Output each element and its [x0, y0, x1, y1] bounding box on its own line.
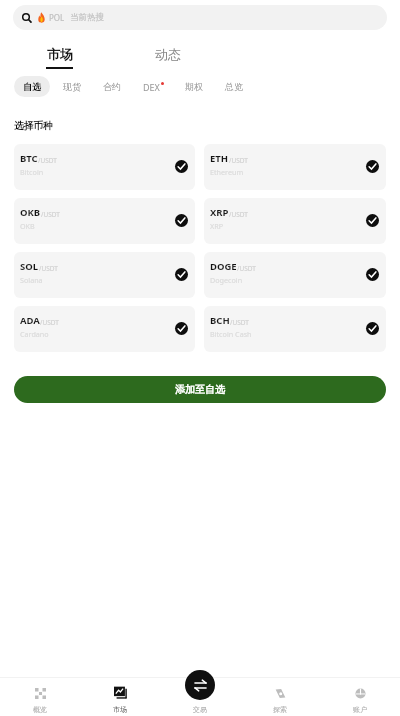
staticText: 概览	[33, 705, 47, 714]
other: 账户	[355, 688, 366, 699]
staticText: 市场	[113, 705, 127, 714]
staticText: 市场	[47, 46, 73, 62]
staticText: BCH	[210, 314, 230, 327]
staticText: 探索	[273, 705, 287, 714]
staticText: 总览	[225, 81, 243, 92]
staticText: 账户	[353, 705, 367, 714]
staticText: OKB	[20, 206, 41, 219]
button[interactable]: 自选	[14, 76, 50, 97]
button[interactable]: ADA	[14, 306, 195, 352]
staticText: ETH	[210, 152, 229, 165]
staticText: Ethereum	[210, 167, 244, 177]
button[interactable]: DOGE	[204, 252, 386, 298]
button[interactable]: 期权	[176, 76, 212, 97]
button[interactable]: 动态	[154, 46, 182, 70]
staticText: OKB	[20, 221, 35, 231]
button[interactable]: 总览	[216, 76, 252, 97]
button[interactable]: Search	[13, 5, 387, 30]
staticText: 期权	[185, 81, 203, 92]
staticText: 选择币种	[14, 120, 53, 132]
button[interactable]: SOL	[14, 252, 195, 298]
staticText: POL	[49, 12, 65, 23]
staticText: /USDT	[230, 318, 249, 327]
staticText: SOL	[20, 260, 39, 273]
button[interactable]: 现货	[54, 76, 90, 97]
staticText: 添加至自选	[175, 383, 225, 396]
button[interactable]: 账户	[320, 670, 400, 716]
other: 市场	[114, 686, 127, 699]
button[interactable]: 添加至自选	[14, 376, 386, 403]
staticText: 合约	[103, 81, 121, 92]
staticText: ADA	[20, 314, 40, 327]
button[interactable]: 合约	[94, 76, 130, 97]
button[interactable]: BCH	[204, 306, 386, 352]
staticText: Solana	[20, 275, 43, 285]
other: 概览	[35, 688, 46, 699]
staticText: 当前热搜	[70, 12, 104, 23]
button[interactable]: 概览	[0, 670, 80, 716]
staticText: 动态	[155, 46, 181, 62]
button[interactable]: 交易	[160, 670, 240, 716]
staticText: /USDT	[38, 156, 57, 165]
staticText: 自选	[23, 81, 41, 92]
button[interactable]: 市场	[45, 46, 73, 70]
staticText: /USDT	[229, 156, 248, 165]
button[interactable]: 探索	[240, 670, 320, 716]
button[interactable]: OKB	[14, 198, 195, 244]
button[interactable]: ETH	[204, 144, 386, 190]
staticText: 现货	[63, 81, 81, 92]
staticText: /USDT	[229, 210, 248, 219]
staticText: /USDT	[237, 264, 256, 273]
button[interactable]: XRP	[204, 198, 386, 244]
staticText: 交易	[193, 705, 207, 714]
staticText: DEX	[143, 81, 160, 93]
other: 交易	[185, 670, 215, 700]
button[interactable]: 市场	[80, 670, 160, 716]
staticText: Bitcoin Cash	[210, 329, 252, 339]
staticText: XRP	[210, 206, 229, 219]
staticText: /USDT	[40, 318, 59, 327]
staticText: BTC	[20, 152, 38, 165]
staticText: /USDT	[41, 210, 60, 219]
staticText: Cardano	[20, 329, 49, 339]
button[interactable]: DEX	[134, 76, 172, 97]
staticText: Dogecoin	[210, 275, 243, 285]
staticText: DOGE	[210, 260, 237, 273]
button[interactable]: BTC	[14, 144, 195, 190]
staticText: /USDT	[39, 264, 58, 273]
other: 探索	[275, 688, 286, 699]
other: Search	[22, 13, 32, 23]
staticText: XRP	[210, 221, 224, 231]
staticText: Bitcoin	[20, 167, 44, 177]
